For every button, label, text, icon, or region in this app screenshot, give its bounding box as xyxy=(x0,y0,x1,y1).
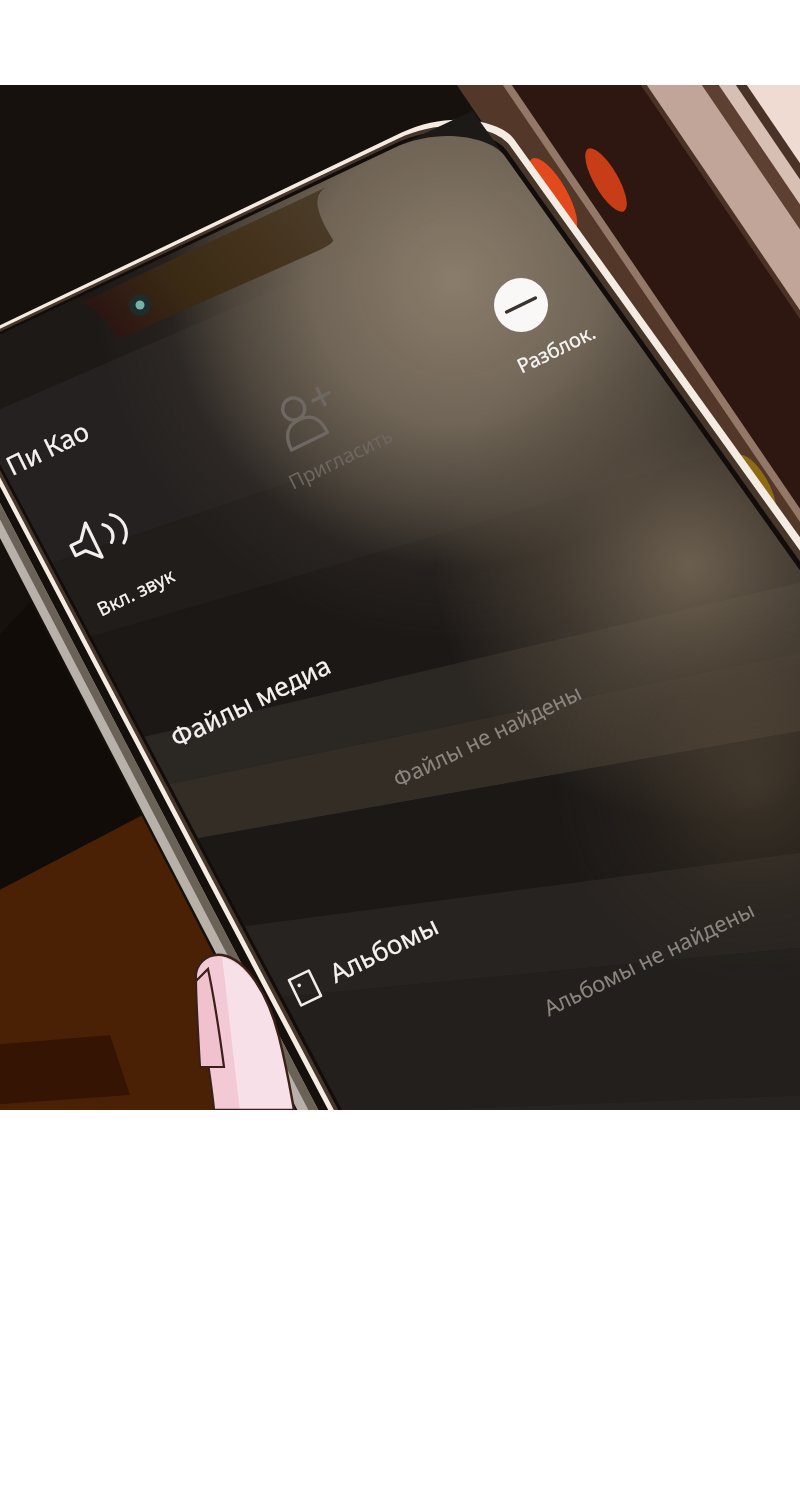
staticText: Файлы не найдены xyxy=(388,676,586,794)
staticText: Пи Као xyxy=(0,412,94,482)
button[interactable]: Файлы медиа xyxy=(164,646,337,755)
staticText: Альбомы xyxy=(323,907,444,990)
button[interactable]: Вкл. звук xyxy=(93,562,179,622)
staticText: Альбомы не найдены xyxy=(538,894,759,1022)
button[interactable]: Пригласить xyxy=(284,422,397,495)
button[interactable]: Альбомы xyxy=(323,907,444,990)
button[interactable]: Разблок. xyxy=(512,318,601,379)
button[interactable]: Пи Као xyxy=(0,412,94,482)
staticText: Вкл. звук xyxy=(93,562,179,622)
staticText: Разблок. xyxy=(512,318,601,379)
staticText: Файлы медиа xyxy=(164,646,337,755)
button[interactable]: Файлы не найдены xyxy=(388,676,586,794)
staticText: Пригласить xyxy=(284,422,397,495)
button[interactable]: Альбомы не найдены xyxy=(538,894,759,1022)
